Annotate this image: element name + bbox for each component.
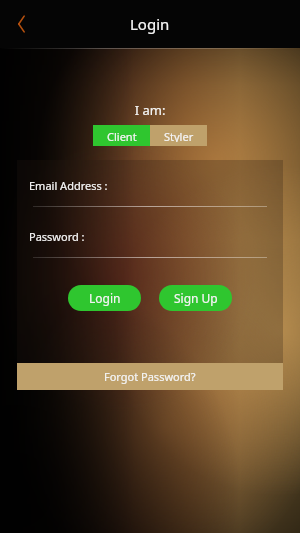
staticText: I am: xyxy=(0,101,300,119)
staticText: Styler xyxy=(164,129,194,142)
button[interactable]: Back xyxy=(6,8,38,40)
button[interactable]: Login xyxy=(68,285,141,311)
button[interactable]: Sign Up xyxy=(159,285,232,311)
button[interactable]: Styler xyxy=(150,125,207,146)
button[interactable]: Client xyxy=(93,125,150,146)
staticText: Client xyxy=(107,129,137,142)
staticText: Forgot Password? xyxy=(104,369,196,384)
staticText: Sign Up xyxy=(174,290,218,306)
staticText: Login xyxy=(130,14,170,34)
staticText: Password : xyxy=(29,229,85,244)
staticText: Email Address : xyxy=(29,178,108,193)
button[interactable]: Forgot Password? xyxy=(17,363,283,390)
staticText: Login xyxy=(89,290,121,306)
